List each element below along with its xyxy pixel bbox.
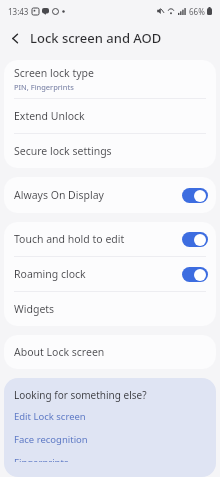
button[interactable]: Roaming clock (4, 257, 216, 291)
staticText: 66% (189, 6, 205, 17)
staticText: Touch and hold to edit (14, 232, 182, 246)
staticText: Screen lock type (14, 66, 94, 80)
button[interactable]: Secure lock settings (4, 134, 216, 168)
staticText: Fingerprints (14, 456, 69, 462)
button[interactable]: Back (0, 23, 30, 53)
staticText: Roaming clock (14, 267, 182, 281)
button[interactable]: Fingerprints (4, 451, 216, 467)
staticText: PIN, Fingerprints (14, 82, 74, 92)
button[interactable]: Face recognition (4, 428, 216, 451)
button[interactable]: Touch and hold to edit (4, 222, 216, 256)
staticText: Extend Unlock (14, 109, 85, 123)
staticText: About Lock screen (14, 345, 105, 359)
button[interactable]: Edit Lock screen (4, 405, 216, 428)
staticText: Face recognition (14, 433, 88, 446)
staticText: Secure lock settings (14, 144, 112, 158)
button[interactable]: Always On Display (4, 177, 216, 213)
staticText: 13:43 (8, 6, 29, 17)
button[interactable]: Widgets (4, 292, 216, 326)
button[interactable]: Roaming clock toggle, on (182, 267, 208, 282)
staticText: Lock screen and AOD (30, 29, 162, 47)
button[interactable]: Extend Unlock (4, 99, 216, 133)
staticText: Always On Display (14, 188, 182, 202)
button[interactable]: About Lock screen (4, 335, 216, 369)
staticText: Widgets (14, 302, 55, 316)
staticText: Edit Lock screen (14, 410, 86, 423)
staticText: Looking for something else? (14, 388, 147, 402)
button[interactable]: Screen lock type (4, 60, 216, 98)
button[interactable]: Always On Display toggle, on (182, 188, 208, 203)
button[interactable]: Touch and hold to edit toggle, on (182, 232, 208, 247)
